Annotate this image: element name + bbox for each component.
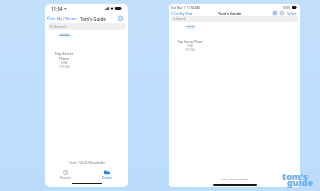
staticText: 100% xyxy=(283,6,291,10)
staticText: 11:54 xyxy=(51,6,63,12)
staticText: Browse xyxy=(102,176,112,180)
button[interactable]: Browse xyxy=(86,168,128,181)
staticText: tom's xyxy=(282,170,308,182)
staticText: On My iPhone xyxy=(50,16,77,21)
button[interactable]: Icon view xyxy=(273,11,277,15)
staticText: Tom's Guide xyxy=(80,16,106,22)
button[interactable]: Top Secret Plans xyxy=(51,32,77,69)
staticText: 1 item, 142.43 GB available xyxy=(169,178,300,181)
staticText: 5 KB xyxy=(51,61,77,65)
staticText: 1 item, 142.43 GB available xyxy=(45,161,128,165)
staticText: guide xyxy=(287,176,314,188)
button[interactable]: Search xyxy=(171,16,298,22)
staticText: 11/1/22 xyxy=(51,65,77,69)
button[interactable]: Recents xyxy=(45,168,86,181)
staticText: Recents xyxy=(60,176,71,180)
button[interactable]: More actions xyxy=(117,15,124,22)
staticText: Select xyxy=(287,11,297,16)
button[interactable]: Search xyxy=(48,23,126,30)
button[interactable]: On My iPhone xyxy=(47,15,77,21)
staticText: Tom's Guide xyxy=(218,11,242,16)
staticText: Top Secret Plans xyxy=(174,40,206,44)
staticText: Search xyxy=(176,17,186,21)
staticText: Top Secret Plans xyxy=(51,51,77,61)
button[interactable]: Select xyxy=(287,11,297,16)
button[interactable]: On My iPad xyxy=(171,11,193,16)
staticText: 11/1/22 xyxy=(174,48,206,52)
button[interactable]: Top Secret Plans xyxy=(174,24,206,52)
button[interactable]: List view xyxy=(280,11,284,15)
staticText: Tue Nov 1 11:54 AM xyxy=(171,6,200,10)
staticText: Search xyxy=(54,24,67,29)
staticText: On My iPad xyxy=(174,11,193,16)
staticText: 5 KB xyxy=(174,44,206,48)
